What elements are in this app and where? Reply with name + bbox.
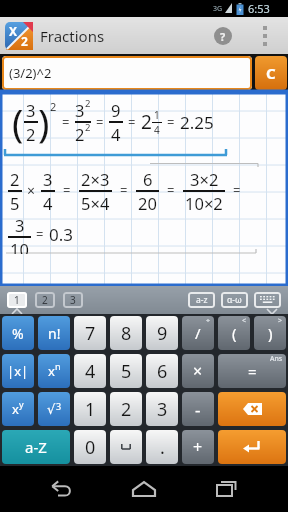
staticText: 5 <box>121 359 132 384</box>
button[interactable] <box>206 474 246 504</box>
button[interactable] <box>218 430 286 464</box>
button[interactable]: 5 <box>110 354 142 388</box>
staticText: = <box>36 225 44 243</box>
button[interactable]: (3/2)^2 <box>2 56 252 90</box>
staticText: 1 <box>14 293 20 307</box>
button[interactable]: 2 <box>35 292 55 308</box>
button[interactable] <box>124 474 164 504</box>
button[interactable]: 1 <box>74 392 106 426</box>
button[interactable]: - <box>182 392 214 426</box>
staticText: Fractions <box>40 26 105 46</box>
button[interactable]: 3 <box>146 392 178 426</box>
button[interactable]: 2 <box>110 392 142 426</box>
button[interactable]: / <box>182 316 214 350</box>
staticText: 3 <box>157 397 168 422</box>
staticText: n <box>55 360 61 372</box>
staticText: 10 <box>10 238 29 254</box>
staticText: 2 <box>50 99 57 114</box>
staticText: 3×2 <box>190 168 219 190</box>
button[interactable]: 9 <box>146 316 178 350</box>
staticText: 3G <box>213 4 223 14</box>
button[interactable] <box>254 292 281 308</box>
staticText: = <box>167 181 175 199</box>
staticText: 1 <box>154 108 160 122</box>
staticText: > <box>278 316 283 326</box>
staticText: = <box>167 113 175 131</box>
button[interactable] <box>218 392 286 426</box>
staticText: 4 <box>85 359 96 384</box>
staticText: = <box>96 113 104 131</box>
button[interactable]: α-ω <box>221 292 248 308</box>
staticText: × <box>193 360 203 382</box>
button[interactable]: a-Z <box>2 430 70 464</box>
button[interactable] <box>42 474 82 504</box>
button[interactable]: 1 <box>7 292 27 308</box>
button[interactable]: 8 <box>110 316 142 350</box>
button[interactable]: 6 <box>146 354 178 388</box>
button[interactable]: % <box>2 316 34 350</box>
staticText: 3 <box>15 214 25 236</box>
button[interactable]: 3 <box>63 292 83 308</box>
staticText: 2 <box>85 97 91 110</box>
button[interactable]: a-z <box>188 292 215 308</box>
button[interactable] <box>110 430 142 464</box>
staticText: n! <box>48 324 61 343</box>
button[interactable]: C <box>255 56 287 90</box>
staticText: X <box>9 23 18 39</box>
button[interactable]: × <box>182 354 214 388</box>
staticText: ? <box>220 29 226 44</box>
staticText: ( <box>232 323 237 343</box>
button[interactable]: ) <box>254 316 286 350</box>
staticText: 3 <box>26 99 36 121</box>
button[interactable]: 7 <box>74 316 106 350</box>
staticText: x <box>12 400 19 418</box>
staticText: 4 <box>111 123 121 145</box>
button[interactable]: X <box>5 22 33 50</box>
button[interactable]: ? <box>214 27 232 45</box>
button[interactable]: √ <box>38 392 70 426</box>
staticText: 4 <box>154 123 160 137</box>
staticText: 2×3 <box>81 168 110 190</box>
button[interactable]: x <box>2 392 34 426</box>
button[interactable] <box>263 26 267 46</box>
staticText: 3 <box>75 99 85 121</box>
button[interactable]: . <box>146 430 178 464</box>
staticText: ÷ <box>206 316 211 326</box>
staticText: 2 <box>85 121 91 134</box>
button[interactable]: ( <box>218 316 250 350</box>
button[interactable]: = <box>218 354 286 388</box>
staticText: 2 <box>42 293 48 307</box>
staticText: ) <box>268 323 273 343</box>
staticText: 8 <box>121 321 132 346</box>
staticText: ) <box>38 96 50 144</box>
button[interactable]: |x| <box>2 354 34 388</box>
staticText: (3/2)^2 <box>9 64 52 82</box>
staticText: α-ω <box>227 294 242 306</box>
staticText: × <box>27 181 36 200</box>
button[interactable]: 4 <box>74 354 106 388</box>
staticText: 3 <box>56 400 62 412</box>
staticText: 1 <box>85 397 96 422</box>
staticText: 2 <box>121 397 132 422</box>
staticText: 2 <box>10 168 20 190</box>
staticText: 6 <box>157 359 168 384</box>
staticText: + <box>193 436 203 458</box>
button[interactable]: n! <box>38 316 70 350</box>
staticText: 2 <box>141 109 152 135</box>
staticText: 7 <box>85 321 96 346</box>
staticText: . <box>160 435 165 460</box>
staticText: % <box>12 324 24 343</box>
staticText: 3 <box>70 293 76 307</box>
staticText: 5×4 <box>81 192 110 212</box>
staticText: = <box>248 361 257 381</box>
staticText: 20 <box>138 192 157 212</box>
staticText: 3 <box>43 168 53 190</box>
staticText: 10×2 <box>185 192 223 212</box>
staticText: 2.25 <box>180 111 214 134</box>
staticText: 2 <box>75 123 85 145</box>
button[interactable]: + <box>182 430 214 464</box>
staticText: a-Z <box>25 437 47 457</box>
staticText: C <box>266 63 276 83</box>
button[interactable]: x <box>38 354 70 388</box>
button[interactable]: 0 <box>74 430 106 464</box>
